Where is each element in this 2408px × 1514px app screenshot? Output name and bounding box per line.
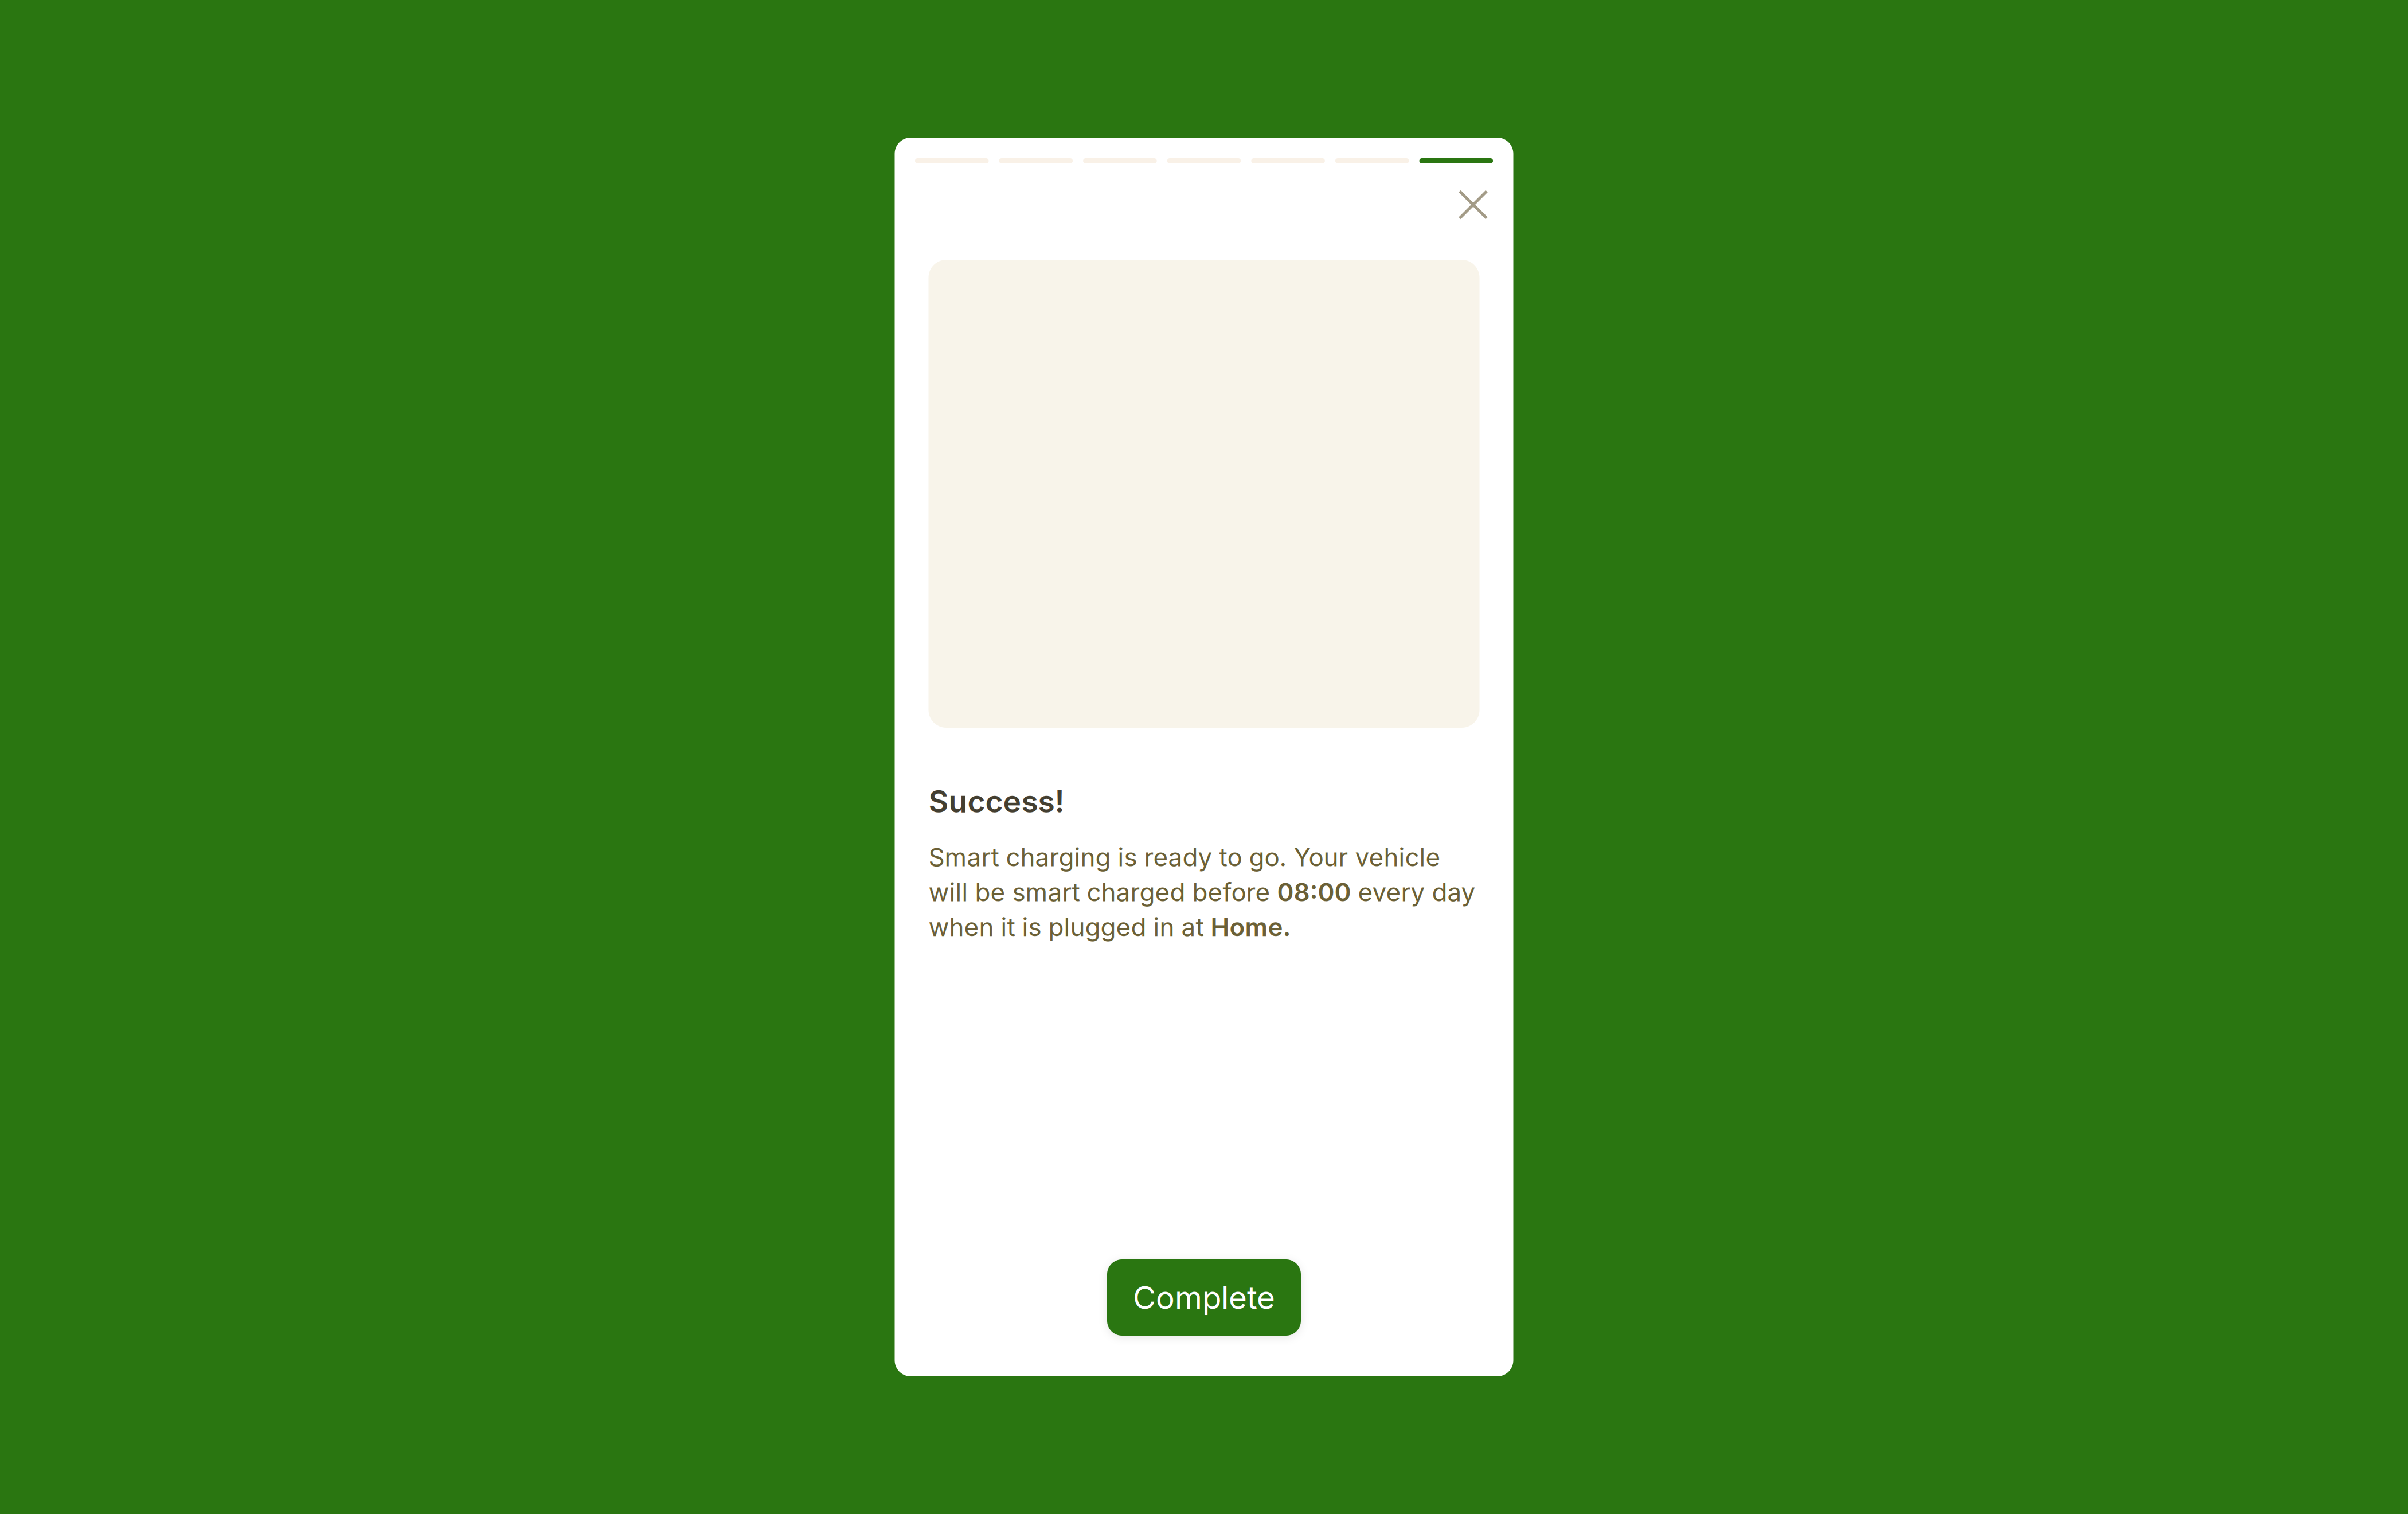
button[interactable]: Complete [1107,1259,1301,1336]
staticText: Smart charging is ready to go. Your vehi… [929,842,1475,942]
button[interactable]: Close [1448,180,1498,230]
staticText: Complete [1133,1279,1275,1316]
staticText: Success! [929,783,1064,820]
